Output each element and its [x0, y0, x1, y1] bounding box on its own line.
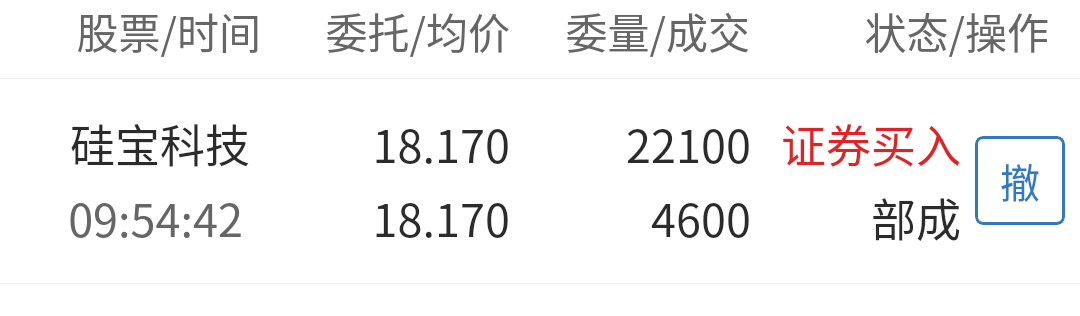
- staticText: 股票/时间: [0, 0, 261, 61]
- button[interactable]: 硅宝科技: [0, 79, 1080, 283]
- staticText: 委量/成交: [0, 0, 750, 61]
- staticText: 委托/均价: [0, 0, 510, 61]
- button[interactable]: 撤单 Cancel order: [975, 136, 1065, 225]
- staticText: 硅宝科技: [0, 111, 250, 176]
- staticText: 部成: [0, 185, 961, 250]
- staticText: 4600: [0, 185, 751, 250]
- staticText: 22100: [0, 111, 751, 176]
- staticText: 18.170: [0, 111, 510, 176]
- staticText: 09:54:42: [0, 185, 243, 250]
- staticText: 证券买入: [0, 111, 961, 176]
- staticText: 撤: [1000, 152, 1040, 210]
- staticText: 状态/操作: [0, 0, 1049, 61]
- staticText: 18.170: [0, 185, 510, 250]
